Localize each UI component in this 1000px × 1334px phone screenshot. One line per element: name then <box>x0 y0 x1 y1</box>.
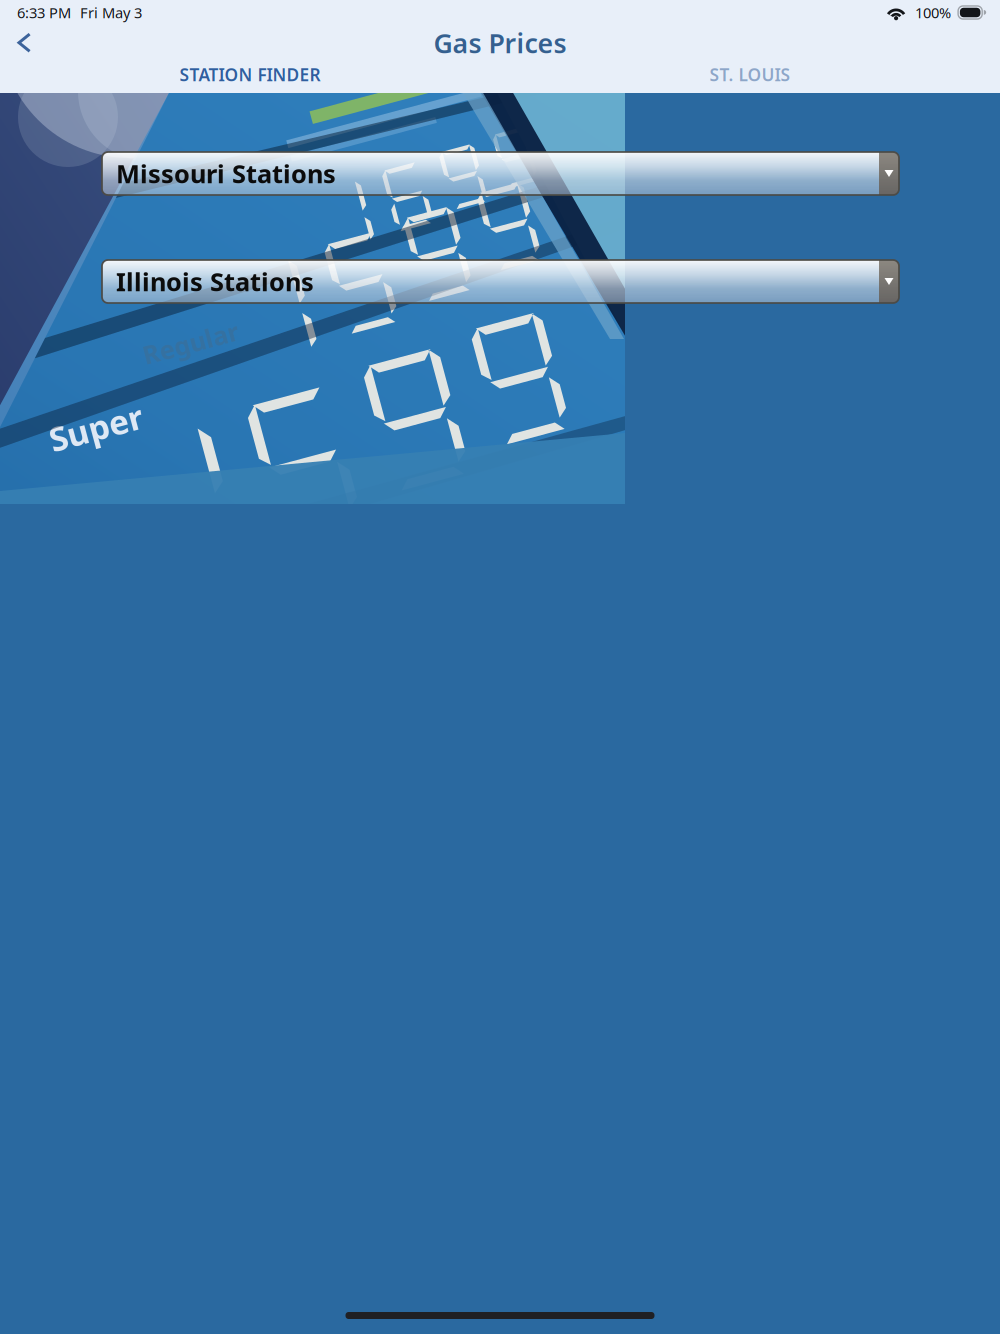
staticText: STATION FINDER <box>179 63 320 86</box>
button[interactable]: Missouri Stations <box>102 152 899 195</box>
button[interactable]: Back <box>0 23 48 63</box>
staticText: 6:33 PM <box>17 3 71 22</box>
button[interactable]: STATION FINDER <box>0 61 500 93</box>
staticText: Illinois Stations <box>116 265 314 298</box>
button[interactable]: ST. LOUIS <box>500 61 1000 93</box>
staticText: ST. LOUIS <box>709 63 790 86</box>
staticText: Gas Prices <box>433 25 566 61</box>
staticText: Missouri Stations <box>116 157 336 190</box>
staticText: Fri May 3 <box>80 3 142 22</box>
button[interactable]: Illinois Stations <box>102 260 899 303</box>
staticText: Super <box>0 467 40 511</box>
staticText: Regular <box>56 415 154 449</box>
staticText: 100% <box>915 3 951 22</box>
